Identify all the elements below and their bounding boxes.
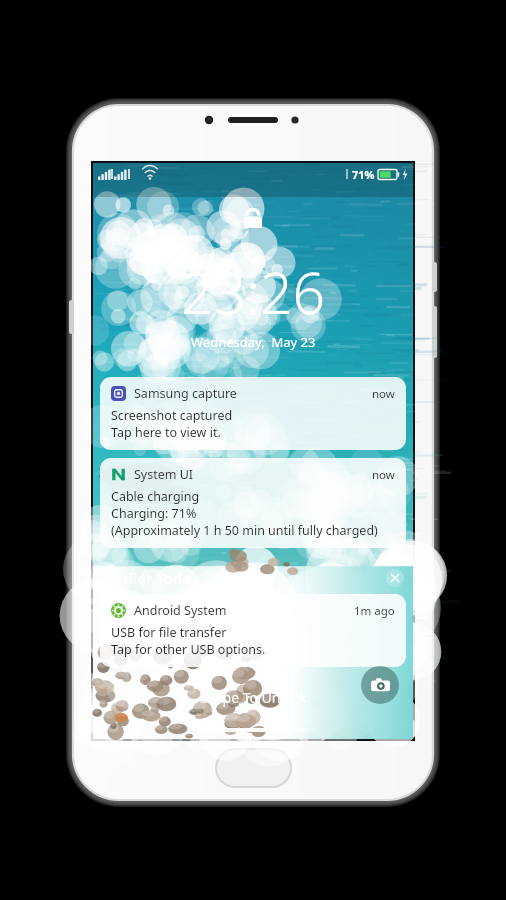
staticText: Screenshot captured: [111, 407, 233, 424]
staticText: Swipe To Unlock: [200, 688, 307, 707]
button[interactable]: Samsung capture: [100, 377, 406, 450]
staticText: 23:26: [181, 253, 326, 331]
staticText: Cable charging: [111, 488, 200, 505]
staticText: 1m ago: [354, 603, 395, 619]
staticText: now: [372, 386, 395, 402]
other: Locked: [240, 205, 266, 231]
staticText: (Approximately 1 h 50 min until fully ch…: [111, 522, 378, 539]
staticText: Earlier Today: [106, 568, 199, 588]
button[interactable]: Camera: [361, 666, 399, 704]
staticText: System UI: [134, 466, 194, 483]
staticText: Tap here to view it.: [111, 424, 221, 441]
staticText: Android System: [134, 602, 227, 619]
staticText: Charging: 71%: [111, 505, 197, 522]
button[interactable]: Phone: [107, 670, 145, 708]
button[interactable]: Clear all notifications: [386, 569, 404, 587]
staticText: Tap for other USB options.: [111, 641, 266, 658]
button[interactable]: System UI: [100, 458, 406, 548]
staticText: now: [372, 467, 395, 483]
staticText: USB for file transfer: [111, 624, 227, 641]
staticText: 71%: [352, 167, 375, 182]
staticText: Samsung capture: [134, 385, 237, 402]
staticText: Wednesday, May 23: [191, 333, 316, 351]
button[interactable]: Android System: [100, 594, 406, 667]
